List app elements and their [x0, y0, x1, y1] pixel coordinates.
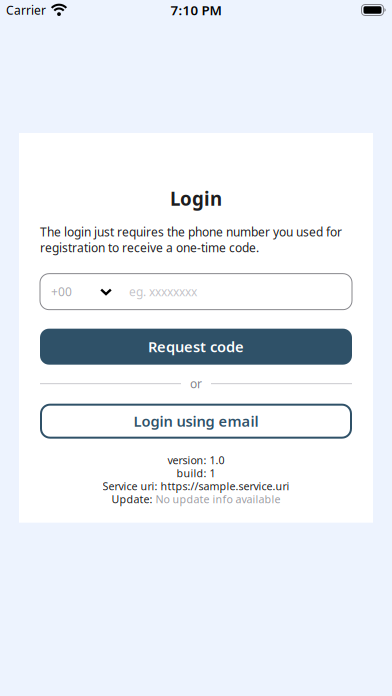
- staticText: Login using email: [133, 411, 258, 431]
- staticText: Service uri: https://sample.service.uri: [102, 479, 289, 493]
- staticText: The login just requires the phone number…: [40, 224, 342, 256]
- button[interactable]: Phone number: [112, 284, 352, 300]
- button[interactable]: Login using email: [40, 404, 352, 439]
- staticText: version: 1.0: [167, 453, 224, 467]
- staticText: or: [190, 376, 202, 392]
- button[interactable]: Country code: [40, 284, 112, 300]
- staticText: Request code: [148, 337, 244, 356]
- staticText: build: 1: [176, 466, 215, 480]
- staticText: Update:: [111, 492, 152, 506]
- staticText: Login: [170, 186, 222, 211]
- staticText: Carrier: [6, 2, 46, 18]
- staticText: No update info available: [155, 492, 280, 506]
- staticText: 7:10 PM: [170, 1, 221, 19]
- staticText: eg. xxxxxxxx: [129, 284, 197, 300]
- staticText: +00: [51, 284, 72, 300]
- button[interactable]: Request code: [40, 329, 352, 365]
